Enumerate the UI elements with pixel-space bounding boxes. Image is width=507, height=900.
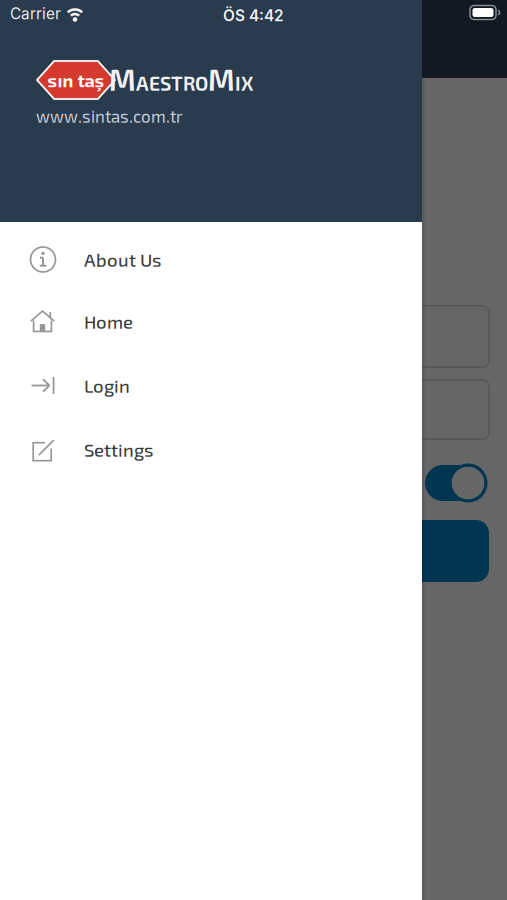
staticText: Carrier	[10, 4, 61, 23]
staticText: www.sintas.com.tr	[36, 106, 183, 126]
staticText: Settings	[84, 438, 153, 461]
staticText: M	[109, 61, 136, 97]
staticText: ÖS 4:42	[223, 6, 284, 25]
staticText: IX	[235, 71, 253, 95]
staticText: M	[208, 61, 235, 97]
button[interactable]: Login	[0, 354, 422, 417]
staticText: Home	[84, 310, 133, 333]
staticText: AESTRO	[136, 71, 208, 95]
button[interactable]: About Us	[0, 228, 422, 291]
button[interactable]: Login	[18, 520, 489, 582]
staticText: Login	[84, 374, 130, 397]
staticText: About Us	[84, 248, 161, 271]
staticText: sın taş	[47, 69, 104, 91]
button[interactable]: Remember me	[425, 465, 486, 501]
button[interactable]: Home	[0, 290, 422, 353]
button[interactable]: Settings	[0, 418, 422, 481]
